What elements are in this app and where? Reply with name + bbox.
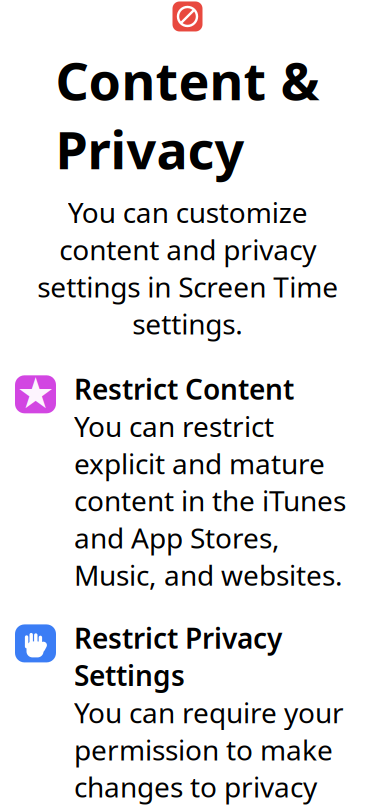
staticText: You can customize content and privacy se… <box>37 194 338 342</box>
staticText: You can restrict explicit and mature con… <box>74 407 346 593</box>
staticText: Content & Privacy <box>55 45 319 184</box>
staticText: Restrict Content <box>74 370 294 407</box>
staticText: You can require your permission to make … <box>74 694 344 812</box>
staticText: Restrict Privacy Settings <box>74 619 282 694</box>
staticText: ★ <box>16 369 54 417</box>
